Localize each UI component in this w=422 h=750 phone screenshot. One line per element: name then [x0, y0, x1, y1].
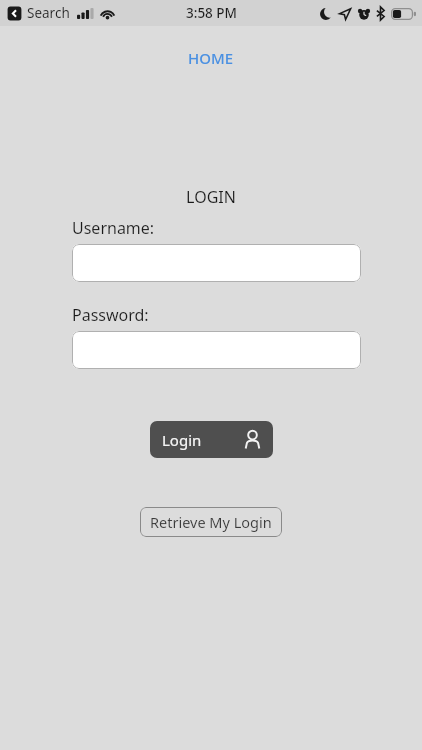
- button[interactable]: HOME: [180, 45, 242, 71]
- staticText: Retrieve My Login: [150, 512, 272, 532]
- staticText: LOGIN: [186, 186, 236, 208]
- staticText: Login: [162, 430, 202, 450]
- staticText: HOME: [188, 48, 234, 68]
- staticText: Password:: [72, 304, 149, 326]
- button[interactable]: Retrieve My Login: [140, 507, 282, 537]
- button[interactable]: [72, 331, 361, 369]
- staticText: Username:: [72, 217, 155, 239]
- staticText: 3:58 PM: [186, 4, 237, 22]
- staticText: Search: [27, 4, 70, 22]
- button[interactable]: [72, 244, 361, 282]
- button[interactable]: Login: [150, 421, 273, 458]
